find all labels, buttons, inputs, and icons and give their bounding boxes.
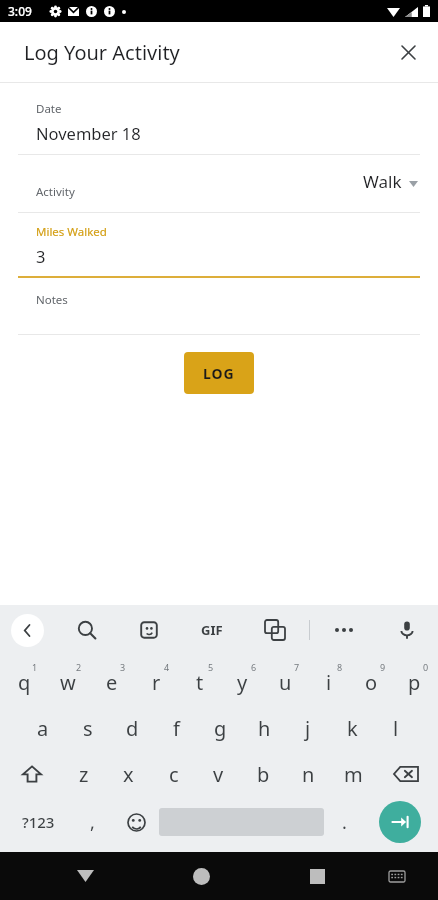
button[interactable]: k — [330, 705, 374, 751]
staticText: w — [60, 669, 76, 696]
staticText: Activity — [36, 184, 75, 200]
staticText: p — [408, 669, 421, 696]
staticText: Notes — [36, 292, 68, 308]
staticText: a — [37, 715, 49, 742]
staticText: k — [347, 715, 358, 742]
button[interactable]: v — [196, 751, 241, 797]
button[interactable]: Activity — [18, 155, 420, 212]
staticText: f — [173, 715, 180, 742]
button[interactable]: x — [106, 751, 151, 797]
button[interactable]: q — [2, 659, 46, 705]
staticText: t — [196, 669, 204, 696]
button[interactable]: u — [264, 659, 307, 705]
button[interactable]: Backspace — [376, 751, 436, 797]
button[interactable]: s — [65, 705, 110, 751]
staticText: 2 — [76, 661, 82, 673]
button[interactable]: ?123 — [4, 797, 72, 847]
staticText: LOG — [203, 364, 235, 383]
staticText: Miles Walked — [36, 224, 107, 240]
button[interactable]: i — [307, 659, 350, 705]
button[interactable]: h — [242, 705, 286, 751]
button[interactable]: Miles Walked — [18, 213, 420, 276]
button[interactable]: e — [90, 659, 134, 705]
staticText: e — [106, 669, 118, 696]
staticText: 9 — [380, 661, 386, 673]
staticText: 0 — [423, 661, 429, 673]
button[interactable]: Comma — [72, 797, 113, 847]
staticText: 3 — [36, 245, 46, 267]
button[interactable]: r — [134, 659, 178, 705]
staticText: 6 — [251, 661, 257, 673]
button[interactable]: Search — [68, 611, 106, 649]
button[interactable]: f — [154, 705, 198, 751]
button[interactable]: t — [178, 659, 221, 705]
button[interactable]: Close — [388, 32, 428, 72]
button[interactable]: Shift — [2, 751, 61, 797]
staticText: Walk — [363, 170, 402, 193]
staticText: q — [18, 669, 31, 696]
button[interactable]: w — [46, 659, 90, 705]
staticText: 3 — [120, 661, 126, 673]
button[interactable]: Stickers — [130, 611, 168, 649]
button[interactable]: Emoji — [113, 797, 159, 847]
staticText: j — [305, 715, 311, 742]
button[interactable]: Period — [324, 797, 365, 847]
button[interactable]: n — [286, 751, 331, 797]
staticText: GIF — [201, 621, 223, 639]
button[interactable]: p — [393, 659, 436, 705]
staticText: d — [126, 715, 139, 742]
staticText: x — [123, 761, 134, 788]
staticText: c — [169, 761, 179, 788]
staticText: i — [326, 669, 332, 696]
staticText: s — [83, 715, 93, 742]
button[interactable]: Translate — [256, 611, 294, 649]
staticText: m — [344, 761, 363, 788]
button[interactable]: j — [286, 705, 330, 751]
staticText: n — [302, 761, 315, 788]
button[interactable]: Recents — [297, 856, 337, 896]
staticText: 4 — [164, 661, 170, 673]
staticText: y — [237, 669, 248, 696]
button[interactable]: m — [331, 751, 376, 797]
staticText: November 18 — [36, 122, 141, 144]
staticText: ?123 — [22, 812, 55, 832]
staticText: z — [79, 761, 89, 788]
button[interactable]: Enter — [379, 801, 421, 843]
button[interactable]: l — [374, 705, 418, 751]
button[interactable]: Back — [11, 614, 44, 647]
button[interactable]: LOG — [184, 352, 254, 394]
staticText: v — [213, 761, 224, 788]
staticText: 3:09 — [8, 3, 32, 19]
button[interactable]: g — [198, 705, 242, 751]
button[interactable]: d — [110, 705, 154, 751]
button[interactable]: Home — [181, 856, 221, 896]
button[interactable]: a — [20, 705, 65, 751]
button[interactable]: GIF — [193, 611, 231, 649]
button[interactable]: More options — [325, 611, 363, 649]
staticText: h — [258, 715, 271, 742]
button[interactable]: Hide keyboard — [65, 856, 105, 896]
button[interactable]: Voice input — [388, 611, 426, 649]
button[interactable]: Date — [18, 101, 420, 154]
staticText: l — [393, 715, 399, 742]
staticText: o — [365, 669, 378, 696]
button[interactable]: z — [61, 751, 106, 797]
staticText: Log Your Activity — [24, 39, 180, 66]
staticText: 1 — [32, 661, 38, 673]
staticText: 5 — [208, 661, 214, 673]
staticText: 7 — [294, 661, 300, 673]
staticText: Date — [36, 101, 62, 117]
button[interactable]: y — [221, 659, 264, 705]
staticText: g — [214, 715, 227, 742]
button[interactable]: Notes — [18, 278, 420, 334]
staticText: , — [90, 810, 95, 835]
staticText: u — [279, 669, 292, 696]
staticText: . — [342, 810, 347, 835]
button[interactable]: Switch keyboard — [379, 858, 415, 894]
staticText: r — [152, 669, 161, 696]
button[interactable]: o — [350, 659, 393, 705]
button[interactable]: c — [151, 751, 196, 797]
staticText: 8 — [337, 661, 343, 673]
button[interactable]: b — [241, 751, 286, 797]
